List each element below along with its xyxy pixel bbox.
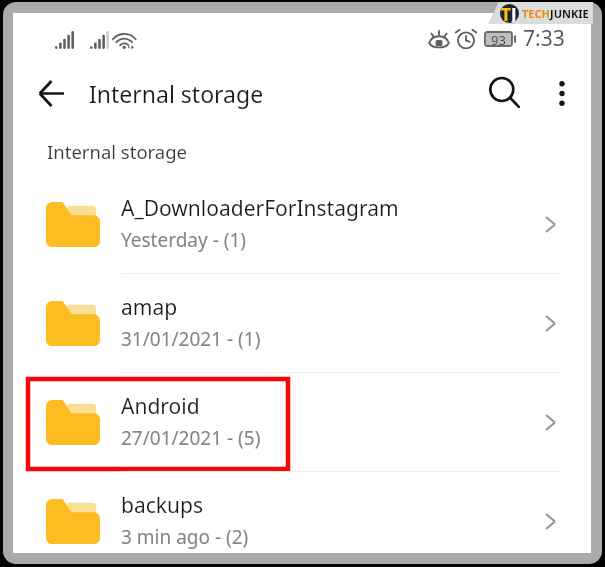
staticText: T (501, 4, 511, 22)
staticText: A_DownloaderForInstagram (121, 194, 399, 223)
button[interactable]: A_DownloaderForInstagram (13, 175, 591, 273)
staticText: Internal storage (47, 139, 188, 164)
button[interactable]: Search (483, 71, 527, 115)
staticText: Yesterday - (1) (121, 227, 246, 253)
button[interactable]: backups (13, 472, 591, 564)
button[interactable]: More options (542, 73, 582, 113)
staticText: Android (121, 392, 200, 421)
staticText: 7:33 (523, 24, 565, 53)
staticText: J (511, 4, 517, 22)
staticText: backups (121, 491, 203, 520)
staticText: 31/01/2021 - (1) (121, 326, 261, 352)
staticText: 3 min ago - (2) (121, 524, 249, 550)
button[interactable]: Android (13, 373, 591, 471)
button[interactable]: Back (31, 73, 71, 113)
staticText: 93 (491, 31, 506, 47)
staticText: amap (121, 293, 178, 322)
staticText: Internal storage (89, 78, 264, 109)
staticText: TECH (522, 6, 550, 21)
staticText: 27/01/2021 - (5) (121, 425, 261, 451)
button[interactable]: amap (13, 274, 591, 372)
staticText: JUNKIE (550, 6, 589, 21)
